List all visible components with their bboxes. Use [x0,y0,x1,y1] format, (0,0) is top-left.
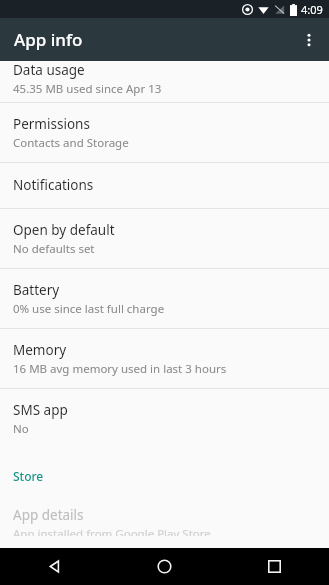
button[interactable]: Recent apps [219,548,329,585]
staticText: 0% use since last full charge [13,301,165,317]
button[interactable]: Open by default [0,209,329,268]
button[interactable]: Battery [0,269,329,328]
staticText: No [13,421,29,437]
button[interactable]: More options [289,20,329,60]
button[interactable]: Home [109,548,219,585]
staticText: No defaults set [13,241,95,257]
button[interactable]: Permissions [0,103,329,162]
staticText: SMS app [13,401,68,419]
button[interactable]: Notifications [0,163,329,208]
staticText: 45.35 MB used since Apr 13 [13,81,162,96]
staticText: Battery [13,281,60,299]
staticText: Store [13,468,44,484]
staticText: 4:09 [301,2,323,17]
button[interactable]: Data usage [0,61,329,102]
button: App details [0,490,329,548]
button[interactable]: Store [0,448,329,490]
staticText: 16 MB avg memory used in last 3 hours [13,361,227,377]
staticText: App info [14,28,83,51]
button[interactable]: Memory [0,329,329,388]
staticText: App installed from Google Play Store [13,526,211,536]
staticText: Open by default [13,221,115,239]
staticText: Permissions [13,115,90,133]
staticText: Memory [13,341,67,359]
button[interactable]: SMS app [0,389,329,448]
button[interactable]: Back [0,548,109,585]
staticText: App details [13,506,84,524]
staticText: Contacts and Storage [13,135,129,151]
staticText: Data usage [13,61,85,79]
staticText: Notifications [13,176,94,194]
